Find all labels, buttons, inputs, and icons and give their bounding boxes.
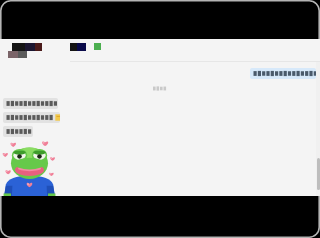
button[interactable]: Frog sticker bbox=[1, 139, 58, 196]
button[interactable] bbox=[3, 98, 58, 109]
button[interactable]: Online status bbox=[8, 43, 101, 57]
button[interactable] bbox=[250, 68, 316, 79]
button[interactable] bbox=[3, 112, 60, 123]
button[interactable]: Scroll bbox=[316, 62, 320, 196]
button[interactable] bbox=[3, 126, 33, 137]
